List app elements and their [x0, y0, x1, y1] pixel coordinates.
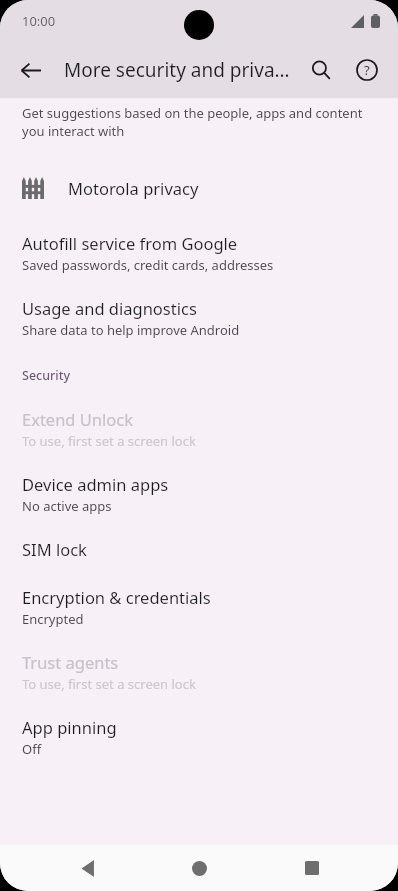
- staticText: No active apps: [22, 497, 112, 515]
- button[interactable]: SIM lock: [0, 538, 398, 560]
- staticText: Security: [22, 367, 71, 384]
- staticText: Off: [22, 740, 42, 758]
- staticText: ?: [364, 61, 370, 79]
- staticText: Get suggestions based on the people, app…: [22, 104, 363, 140]
- staticText: To use, first set a screen lock: [22, 675, 196, 693]
- button[interactable]: Back: [61, 845, 113, 891]
- staticText: Trust agents: [22, 651, 119, 673]
- staticText: Share data to help improve Android: [22, 321, 240, 339]
- staticText: Autofill service from Google: [22, 232, 238, 254]
- button[interactable]: Help: [344, 47, 390, 93]
- staticText: 10:00: [22, 12, 56, 30]
- button[interactable]: Back: [8, 48, 52, 92]
- button[interactable]: Recent apps: [286, 845, 338, 891]
- button[interactable]: App pinning: [0, 716, 398, 758]
- button[interactable]: Autofill service from Google: [0, 232, 398, 274]
- button[interactable]: Home: [173, 845, 225, 891]
- staticText: Usage and diagnostics: [22, 297, 197, 319]
- staticText: Extend Unlock: [22, 408, 134, 430]
- button[interactable]: Trust agents: [0, 651, 398, 693]
- button[interactable]: Usage and diagnostics: [0, 297, 398, 339]
- button[interactable]: Device admin apps: [0, 473, 398, 515]
- button[interactable]: Get suggestions based on the people, app…: [0, 104, 398, 140]
- staticText: Motorola privacy: [68, 177, 199, 199]
- staticText: More security and priva…: [64, 57, 298, 83]
- staticText: Encryption & credentials: [22, 586, 211, 608]
- staticText: Saved passwords, credit cards, addresses: [22, 256, 274, 274]
- staticText: App pinning: [22, 716, 117, 738]
- staticText: To use, first set a screen lock: [22, 432, 196, 450]
- button[interactable]: Search: [298, 47, 344, 93]
- staticText: Device admin apps: [22, 473, 169, 495]
- button[interactable]: Encryption & credentials: [0, 586, 398, 628]
- staticText: SIM lock: [22, 538, 87, 560]
- staticText: Encrypted: [22, 610, 84, 628]
- button[interactable]: Motorola privacy: [0, 166, 398, 210]
- button[interactable]: Extend Unlock: [0, 408, 398, 450]
